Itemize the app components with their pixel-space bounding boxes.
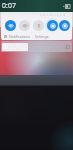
button[interactable]: Bluetooth xyxy=(17,18,31,32)
other: Expand xyxy=(66,45,70,49)
staticText: Notifications xyxy=(9,34,30,39)
staticText: Settings xyxy=(35,34,49,39)
button[interactable]: Expand xyxy=(1,41,72,52)
staticText: 0:07 xyxy=(2,1,16,11)
button[interactable]: Location xyxy=(45,18,59,32)
button[interactable]: Auto rotate xyxy=(59,18,70,32)
button[interactable]: Wi-Fi xyxy=(3,18,17,32)
button[interactable]: Flashlight xyxy=(31,18,45,32)
